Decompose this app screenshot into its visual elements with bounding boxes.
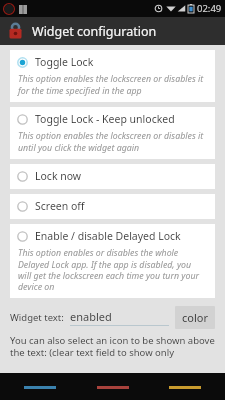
button[interactable]: Tab [87,380,139,394]
staticText: This option enables the lockscreen or di… [18,73,206,96]
button[interactable]: Tab [159,380,211,394]
staticText: Widget text: [10,311,64,324]
staticText: Toggle Lock [35,55,94,69]
staticText: Screen off [35,199,85,213]
staticText: This option enables the lockscreen or di… [18,130,206,153]
staticText: Lock now [35,169,82,183]
button[interactable]: Toggle Lock [10,50,215,102]
staticText: Widget configuration [32,23,157,40]
staticText: This option enables or disables the whol… [18,247,206,292]
button[interactable]: Toggle Lock - Keep unlocked [10,107,215,159]
staticText: You can also select an icon to be shown … [10,334,215,359]
staticText: Enable / disable Delayed Lock [35,229,181,243]
staticText: 02:49 [197,2,222,15]
staticText: Toggle Lock - Keep unlocked [35,112,175,126]
staticText: enabled [70,309,112,324]
button[interactable]: Enable / disable Delayed Lock [10,224,215,298]
button[interactable]: enabled [70,309,169,327]
button[interactable]: Screen off [10,194,215,219]
button[interactable]: color [175,306,215,329]
staticText: color [182,310,208,325]
button[interactable]: Lock now [10,164,215,189]
button[interactable]: Tab [14,380,66,394]
